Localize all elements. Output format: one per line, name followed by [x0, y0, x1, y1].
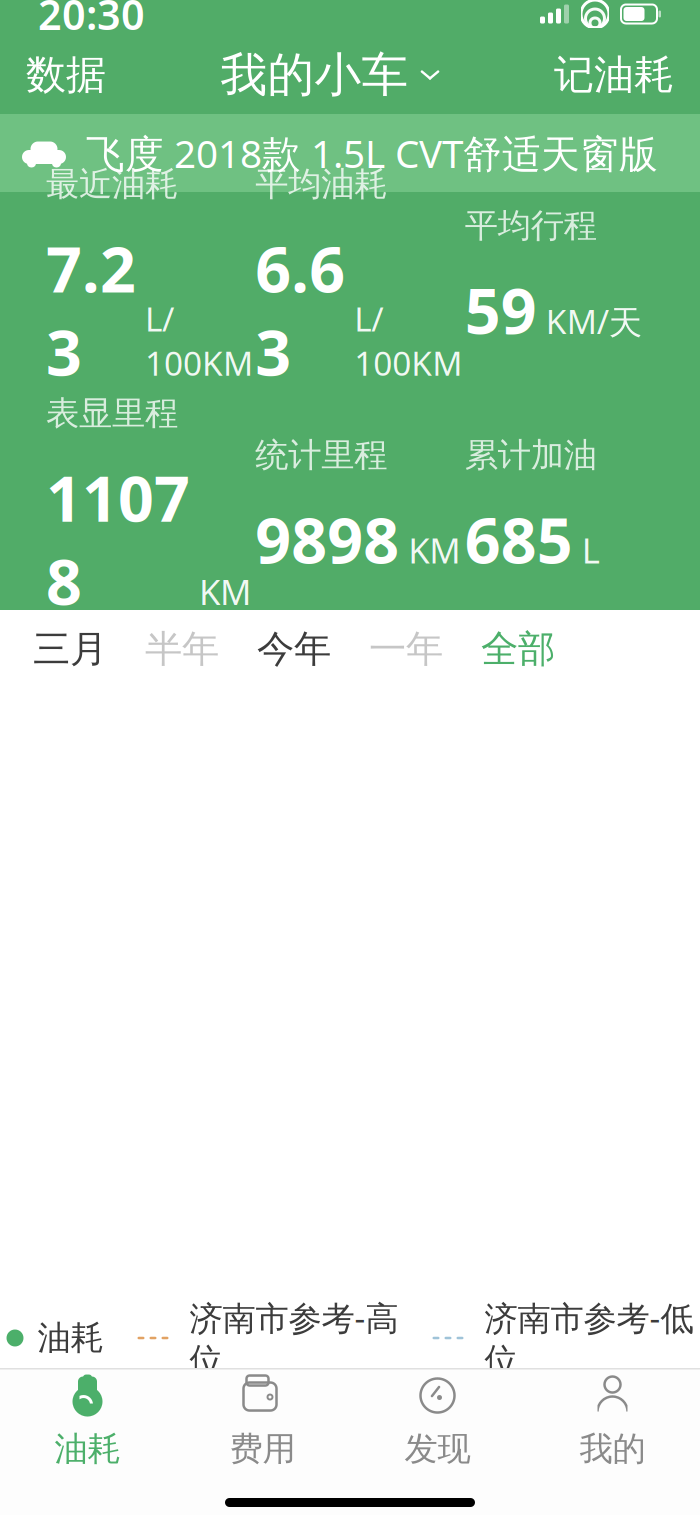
button[interactable]: 费用 — [175, 1364, 350, 1479]
staticText: 济南市参考-低位 — [484, 1295, 693, 1381]
staticText: 685 — [465, 498, 573, 581]
staticText: 油耗 — [54, 1428, 120, 1469]
staticText: 11078 — [46, 456, 190, 622]
staticText: 飞度 2018款 1.5L CVT舒适天窗版 — [86, 127, 658, 179]
staticText: 今年 — [257, 626, 331, 672]
staticText: L/100KM — [145, 296, 253, 385]
staticText: KM/天 — [546, 299, 642, 343]
staticText: 数据 — [26, 50, 106, 99]
button[interactable]: 油耗 — [0, 1364, 175, 1479]
staticText: 三月 — [33, 626, 107, 672]
button[interactable]: 发现 — [350, 1364, 525, 1479]
staticText: 59 — [465, 268, 537, 351]
staticText: 7.23 — [46, 227, 136, 393]
staticText: 济南市参考-高位 — [189, 1295, 398, 1381]
button[interactable]: 半年 — [126, 612, 238, 686]
staticText: 平均油耗 — [255, 164, 387, 204]
staticText: 平均行程 — [465, 205, 597, 246]
button[interactable]: 我的 — [525, 1364, 700, 1479]
button[interactable]: 一年 — [350, 612, 462, 686]
staticText: 最近油耗 — [46, 164, 178, 204]
staticText: 发现 — [404, 1428, 470, 1469]
button[interactable]: 今年 — [238, 612, 350, 686]
staticText: L/100KM — [354, 296, 462, 385]
staticText: 半年 — [145, 626, 219, 672]
staticText: KM — [408, 527, 460, 573]
staticText: 油耗 — [37, 1317, 103, 1358]
staticText: 累计加油 — [465, 435, 597, 475]
staticText: 表显里程 — [46, 393, 178, 434]
button[interactable]: 飞度 2018款 1.5L CVT舒适天窗版 — [0, 114, 700, 192]
button[interactable]: 全部 — [462, 612, 574, 686]
staticText: 统计里程 — [255, 435, 387, 475]
button[interactable]: 我的小车 — [206, 36, 453, 114]
staticText: 我的 — [579, 1428, 645, 1469]
staticText: 全部 — [481, 626, 555, 672]
button[interactable]: 记油耗 — [528, 38, 700, 111]
staticText: 一年 — [369, 626, 443, 672]
staticText: 我的小车 — [220, 46, 408, 104]
button[interactable]: 数据 — [0, 38, 132, 111]
staticText: 费用 — [229, 1428, 295, 1469]
staticText: 9898 — [255, 498, 399, 581]
staticText: L — [582, 527, 600, 573]
staticText: 20:30 — [38, 0, 145, 41]
staticText: 记油耗 — [554, 50, 674, 99]
button[interactable]: 三月 — [14, 612, 126, 686]
staticText: 6.63 — [255, 227, 345, 393]
staticText: KM — [199, 569, 251, 615]
